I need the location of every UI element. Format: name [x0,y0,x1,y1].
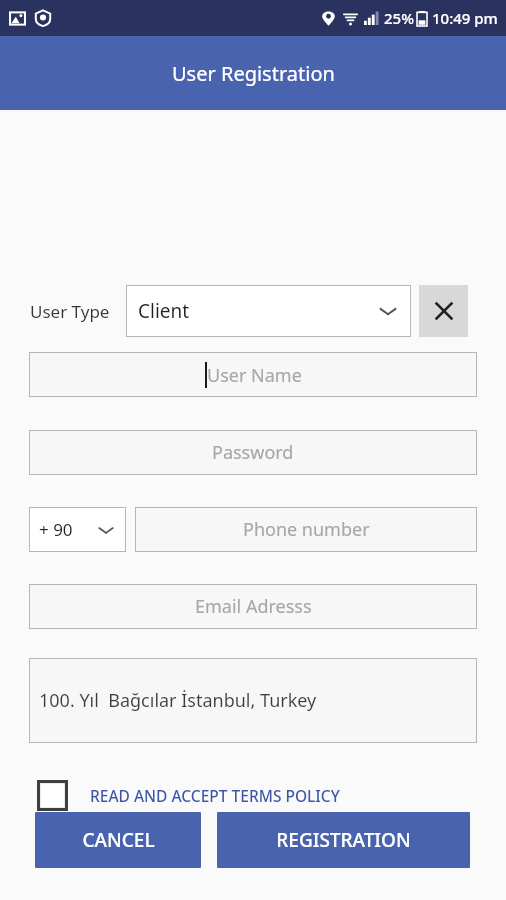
button[interactable]: READ AND ACCEPT TERMS POLICY [37,780,477,811]
staticText: 10:49 pm [432,8,498,28]
button[interactable]: Clear user type [419,285,468,337]
staticText: 100. Yıl Bağcılar İstanbul, Turkey [39,688,317,713]
staticText: User Registration [172,60,335,87]
staticText: Email Adresss [195,594,312,619]
button[interactable]: Password [29,430,477,475]
button[interactable]: + 90 [29,507,126,552]
staticText: + 90 [39,518,73,541]
button[interactable]: 100. Yıl Bağcılar İstanbul, Turkey [29,658,477,743]
button[interactable]: Phone number [135,507,477,552]
staticText: REGISTRATION [276,827,411,853]
staticText: Password [212,440,294,465]
staticText: User Type [30,300,110,323]
staticText: Client [138,298,190,324]
button[interactable]: REGISTRATION [217,812,470,868]
staticText: 25% [384,8,414,28]
staticText: Phone number [243,517,370,542]
staticText: READ AND ACCEPT TERMS POLICY [90,785,340,806]
button[interactable]: Client [126,285,411,337]
button[interactable]: Email Adresss [29,584,477,629]
button[interactable]: CANCEL [35,812,201,868]
staticText: User Name [207,363,302,388]
staticText: CANCEL [82,827,155,853]
button[interactable]: User Name [29,352,477,397]
